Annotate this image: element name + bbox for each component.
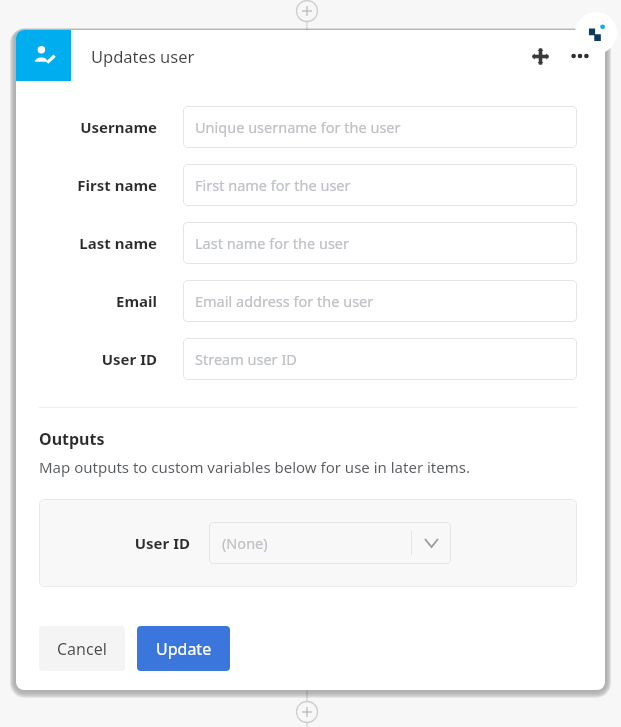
staticText: Last name for the user — [195, 233, 350, 253]
button[interactable]: Integration badge — [575, 12, 617, 54]
staticText: User ID — [39, 533, 190, 553]
staticText: Last name — [36, 233, 157, 253]
button[interactable]: Unique username for the user — [183, 106, 577, 148]
staticText: Updates user — [91, 45, 195, 67]
staticText: Outputs — [39, 428, 105, 450]
button[interactable]: Stream user ID — [183, 338, 577, 380]
button[interactable]: Last name for the user — [183, 222, 577, 264]
staticText: First name — [36, 175, 157, 195]
button[interactable]: Update user action — [16, 30, 71, 81]
button[interactable]: Move — [523, 39, 557, 73]
staticText: Unique username for the user — [195, 117, 401, 137]
staticText: First name for the user — [195, 175, 351, 195]
button[interactable]: Update — [137, 626, 230, 671]
button[interactable]: First name for the user — [183, 164, 577, 206]
staticText: Stream user ID — [195, 349, 297, 369]
staticText: Map outputs to custom variables below fo… — [39, 457, 470, 477]
staticText: Update — [156, 638, 212, 660]
staticText: (None) — [222, 533, 411, 553]
staticText: Username — [36, 117, 157, 137]
button[interactable]: More options — [563, 39, 597, 73]
staticText: Email address for the user — [195, 291, 374, 311]
button[interactable]: Cancel — [39, 626, 125, 671]
staticText: User ID — [36, 349, 157, 369]
staticText: Email — [36, 291, 157, 311]
button[interactable]: User ID output variable — [209, 522, 451, 564]
staticText: Cancel — [57, 638, 107, 660]
button[interactable]: Email address for the user — [183, 280, 577, 322]
